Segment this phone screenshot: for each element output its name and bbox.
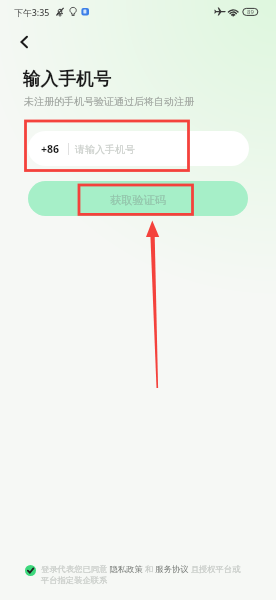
staticText: 未注册的手机号验证通过后将自动注册 bbox=[24, 95, 194, 108]
staticText: 下午3:35 bbox=[14, 6, 50, 18]
staticText: +86 bbox=[41, 142, 60, 156]
button[interactable]: Back bbox=[12, 31, 34, 53]
staticText: 89 bbox=[247, 8, 254, 15]
button[interactable]: 登录代表您已同意 隐私政策 和 服务协议 且授权平台或平台指定装企联系 bbox=[25, 563, 247, 585]
staticText: 输入手机号 bbox=[23, 68, 111, 90]
staticText: 请输入手机号 bbox=[75, 143, 135, 156]
button[interactable]: +86 bbox=[28, 131, 249, 166]
staticText: 登录代表您已同意 隐私政策 和 服务协议 且授权平台或平台指定装企联系 bbox=[41, 563, 247, 585]
staticText: 获取验证码 bbox=[110, 193, 166, 207]
button[interactable]: 获取验证码 bbox=[28, 181, 248, 216]
